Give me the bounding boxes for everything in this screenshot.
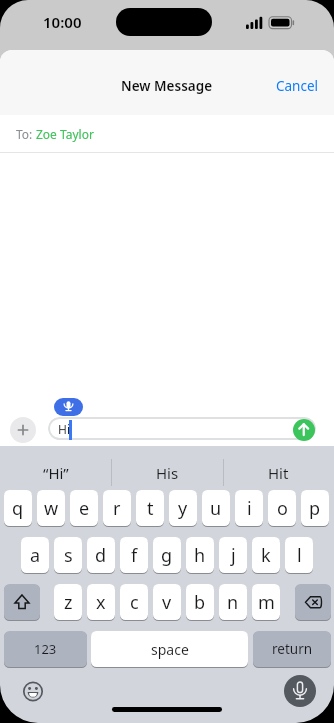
button[interactable] — [10, 417, 36, 443]
button[interactable]: f — [120, 537, 148, 573]
button[interactable]: h — [186, 537, 214, 573]
staticText: j — [231, 543, 236, 568]
button[interactable] — [293, 419, 315, 441]
button[interactable]: b — [186, 584, 214, 620]
staticText: return — [272, 640, 313, 658]
button[interactable]: c — [120, 584, 148, 620]
staticText: d — [95, 543, 107, 568]
button[interactable] — [295, 584, 331, 620]
button[interactable]: u — [202, 490, 230, 526]
button[interactable]: q — [4, 490, 32, 526]
staticText: p — [309, 496, 321, 521]
staticText: k — [261, 543, 271, 568]
staticText: z — [64, 590, 73, 615]
staticText: Hit — [268, 463, 289, 483]
button[interactable]: w — [37, 490, 65, 526]
button[interactable]: y — [169, 490, 197, 526]
staticText: c — [130, 590, 139, 615]
button[interactable]: e — [70, 490, 98, 526]
button[interactable]: l — [285, 537, 313, 573]
staticText: s — [64, 543, 73, 568]
staticText: e — [79, 496, 90, 521]
button[interactable]: return — [253, 631, 331, 667]
button[interactable]: Hit — [223, 455, 334, 491]
button[interactable]: space — [91, 631, 248, 667]
staticText: To: — [16, 126, 36, 142]
button[interactable]: n — [219, 584, 247, 620]
staticText: Zoe Taylor — [36, 126, 94, 142]
button[interactable]: Cancel — [0, 56, 319, 115]
staticText: New Message — [121, 77, 213, 95]
button[interactable] — [284, 675, 316, 707]
button[interactable]: d — [87, 537, 115, 573]
button[interactable]: k — [252, 537, 280, 573]
staticText: r — [113, 496, 121, 521]
staticText: Hi — [58, 421, 70, 437]
button[interactable]: a — [21, 537, 49, 573]
button[interactable]: His — [112, 455, 223, 491]
button[interactable]: 123 — [4, 631, 87, 667]
staticText: m — [258, 590, 275, 615]
staticText: v — [162, 590, 172, 615]
button[interactable]: r — [103, 490, 131, 526]
staticText: b — [194, 590, 206, 615]
button[interactable]: m — [252, 584, 280, 620]
staticText: “Hi” — [43, 463, 69, 483]
staticText: w — [44, 496, 59, 521]
button[interactable]: i — [235, 490, 263, 526]
button[interactable]: z — [54, 584, 82, 620]
button[interactable] — [4, 584, 40, 620]
staticText: x — [96, 590, 106, 615]
staticText: g — [161, 543, 173, 568]
staticText: l — [297, 543, 302, 568]
staticText: space — [151, 640, 189, 659]
staticText: u — [210, 496, 222, 521]
staticText: y — [178, 496, 188, 521]
button[interactable]: To: — [0, 115, 334, 152]
staticText: i — [247, 496, 252, 521]
staticText: t — [147, 496, 154, 521]
button[interactable]: j — [219, 537, 247, 573]
staticText: 123 — [34, 640, 57, 658]
staticText: q — [12, 496, 24, 521]
button[interactable]: g — [153, 537, 181, 573]
button[interactable]: s — [54, 537, 82, 573]
staticText: Cancel — [276, 77, 319, 95]
button[interactable]: “Hi” — [0, 455, 111, 491]
button[interactable]: x — [87, 584, 115, 620]
staticText: f — [131, 543, 138, 568]
staticText: His — [156, 463, 179, 483]
button[interactable]: o — [268, 490, 296, 526]
staticText: 10:00 — [43, 12, 82, 32]
button[interactable]: p — [301, 490, 329, 526]
button[interactable] — [17, 675, 49, 707]
button[interactable]: v — [153, 584, 181, 620]
staticText: h — [194, 543, 206, 568]
staticText: n — [227, 590, 239, 615]
button[interactable]: t — [136, 490, 164, 526]
staticText: a — [30, 543, 41, 568]
staticText: o — [277, 496, 288, 521]
